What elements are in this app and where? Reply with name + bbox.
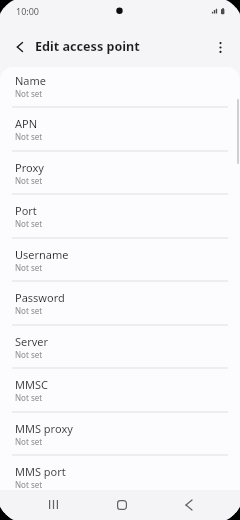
button[interactable]: APN — [0, 107, 240, 151]
staticText: Proxy — [15, 160, 44, 175]
staticText: MMSC — [15, 377, 48, 392]
staticText: Not set — [15, 305, 43, 316]
staticText: Password — [15, 290, 65, 305]
staticText: Not set — [15, 88, 43, 99]
staticText: Not set — [15, 175, 43, 186]
staticText: Not set — [15, 436, 43, 447]
button[interactable]: Back — [176, 492, 201, 517]
button[interactable]: More options — [208, 35, 232, 59]
button[interactable]: Recent apps — [41, 492, 66, 517]
button[interactable]: Password — [0, 281, 240, 325]
button[interactable]: Proxy — [0, 151, 240, 195]
staticText: MMS port — [15, 464, 66, 479]
button[interactable]: Navigate up — [8, 35, 32, 59]
staticText: Port — [15, 203, 37, 218]
staticText: 10:00 — [16, 5, 40, 17]
button[interactable]: MMS port — [0, 455, 240, 490]
button[interactable]: MMS proxy — [0, 412, 240, 456]
staticText: Not set — [15, 262, 43, 273]
staticText: Name — [15, 73, 47, 88]
staticText: Not set — [15, 479, 43, 490]
staticText: Username — [15, 247, 69, 262]
button[interactable]: Port — [0, 194, 240, 238]
staticText: Server — [15, 334, 49, 349]
staticText: Not set — [15, 218, 43, 229]
staticText: Not set — [15, 392, 43, 403]
staticText: Not set — [15, 131, 43, 142]
staticText: Edit access point — [35, 38, 140, 55]
button[interactable]: Home — [109, 492, 134, 517]
staticText: APN — [15, 116, 38, 131]
staticText: MMS proxy — [15, 421, 73, 436]
staticText: Not set — [15, 349, 43, 360]
button[interactable]: Name — [0, 67, 240, 108]
button[interactable]: Server — [0, 325, 240, 369]
button[interactable]: MMSC — [0, 368, 240, 412]
button[interactable]: Username — [0, 238, 240, 282]
